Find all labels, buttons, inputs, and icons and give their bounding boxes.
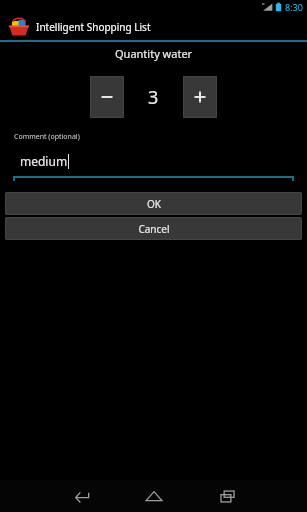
staticText: medium — [20, 153, 68, 169]
button[interactable]: Recent apps — [211, 480, 245, 512]
staticText: 8:30 — [285, 1, 303, 13]
button[interactable]: Increase — [183, 76, 217, 118]
button[interactable]: Cancel — [5, 217, 302, 240]
staticText: Intelligent Shopping List — [36, 20, 151, 34]
button[interactable]: Home — [137, 480, 171, 512]
button[interactable]: medium — [14, 150, 293, 172]
button[interactable]: OK — [5, 192, 302, 215]
staticText: Quantity water — [115, 46, 193, 61]
button[interactable]: Back — [63, 480, 97, 512]
staticText: Cancel — [138, 222, 170, 236]
button[interactable]: Decrease — [90, 76, 124, 118]
staticText: 3 — [148, 85, 159, 110]
staticText: OK — [147, 197, 161, 211]
staticText: Comment (optional) — [14, 132, 80, 142]
